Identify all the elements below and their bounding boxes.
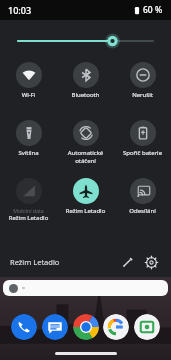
- button[interactable]: [3, 280, 168, 296]
- staticText: 60 %: [143, 4, 163, 16]
- staticText: Nerušit: [116, 91, 169, 99]
- button[interactable]: Wi-Fi: [0, 60, 57, 112]
- staticText: Odesílání: [116, 207, 169, 215]
- staticText: Spořič baterie: [116, 149, 169, 157]
- button[interactable]: Svítilna: [0, 118, 57, 170]
- button[interactable]: Režim Letadlo: [57, 176, 114, 228]
- staticText: Mobilní data: [13, 207, 44, 214]
- button[interactable]: Nerušit: [114, 60, 171, 112]
- button[interactable]: Jas: [18, 32, 153, 50]
- staticText: Automatické otáčení: [59, 149, 112, 165]
- button[interactable]: Nastavení: [141, 252, 161, 272]
- button[interactable]: Zprávy: [42, 314, 68, 340]
- staticText: Svítilna: [2, 149, 55, 157]
- button[interactable]: Mobilní data: [0, 176, 57, 228]
- staticText: Bluetooth: [59, 91, 112, 99]
- staticText: Wi-Fi: [2, 91, 55, 99]
- button[interactable]: Bluetooth: [57, 60, 114, 112]
- button[interactable]: Telefon: [11, 314, 37, 340]
- button[interactable]: Spořič baterie: [114, 118, 171, 170]
- staticText: Režim Letadlo: [10, 257, 60, 267]
- button[interactable]: Chrome: [73, 314, 99, 340]
- staticText: 10:03: [8, 4, 32, 16]
- button[interactable]: Google: [103, 314, 129, 340]
- staticText: Režim Letadlo: [2, 214, 55, 222]
- button[interactable]: Upravit: [117, 252, 137, 272]
- button[interactable]: Automatické otáčení: [57, 118, 114, 170]
- button[interactable]: Fotoaparát: [134, 314, 160, 340]
- button[interactable]: Odesílání: [114, 176, 171, 228]
- staticText: Režim Letadlo: [59, 207, 112, 215]
